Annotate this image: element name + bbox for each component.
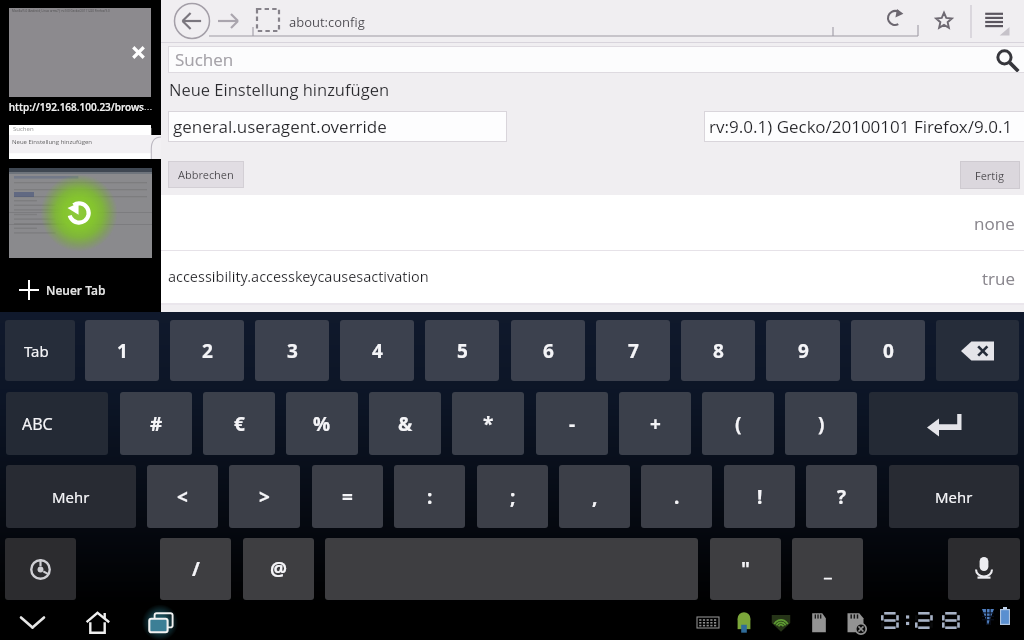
button[interactable]: > [229, 465, 300, 528]
staticText: Tab [24, 341, 49, 361]
staticText: , [592, 484, 598, 510]
staticText: @ [270, 556, 288, 582]
button[interactable] [9, 168, 152, 258]
button[interactable]: Enter [869, 392, 1018, 455]
button[interactable]: % [286, 392, 358, 455]
staticText: Mehr [935, 487, 973, 507]
staticText: & [398, 411, 413, 437]
button[interactable]: @ [243, 538, 314, 600]
button[interactable]: 5 [425, 320, 499, 381]
staticText: Mehr [52, 487, 90, 507]
staticText: 3 [287, 338, 298, 364]
button[interactable]: Fertig [960, 161, 1020, 189]
button[interactable]: Suchen [168, 46, 1024, 73]
button[interactable]: Abbrechen [168, 161, 244, 188]
staticText: ( [735, 411, 742, 437]
staticText: Abbrechen [178, 167, 234, 182]
button[interactable]: / [160, 538, 231, 600]
staticText: 0 [883, 338, 894, 364]
button[interactable]: Back [12, 605, 52, 640]
staticText: ) [818, 411, 825, 437]
staticText: http://192.168.100.23/brows... [0, 100, 161, 114]
button[interactable]: ? [806, 465, 877, 528]
staticText: Suchen [175, 48, 234, 71]
staticText: * [483, 411, 494, 437]
button[interactable]: Suchen [9, 125, 161, 159]
button[interactable]: general.useragent.override [168, 111, 507, 142]
button[interactable]: 0 [851, 320, 925, 381]
staticText: 2 [202, 338, 213, 364]
staticText: > [259, 484, 270, 510]
button[interactable]: ! [724, 465, 795, 528]
staticText: ; [510, 484, 516, 510]
button[interactable]: = [312, 465, 383, 528]
button[interactable]: ) [785, 392, 857, 455]
button[interactable]: Mehr [889, 465, 1019, 528]
button[interactable]: rv:9.0.1) Gecko/20100101 Firefox/9.0.1 [704, 111, 1024, 142]
staticText: Neue Einstellung hinzufügen [12, 138, 93, 146]
staticText: rv:9.0.1) Gecko/20100101 Firefox/9.0.1 [709, 115, 1013, 138]
staticText: general.useragent.override [173, 115, 387, 138]
button[interactable]: 1 [85, 320, 159, 381]
button[interactable]: 9 [766, 320, 840, 381]
staticText: Neue Einstellung hinzufügen [169, 78, 390, 100]
button[interactable]: Forward [217, 10, 239, 32]
button[interactable]: # [120, 392, 192, 455]
button[interactable]: 7 [596, 320, 670, 381]
button[interactable]: - [536, 392, 608, 455]
button[interactable]: Close tab [128, 42, 149, 63]
button[interactable]: Backspace [936, 320, 1019, 381]
button[interactable]: none [161, 195, 1024, 250]
staticText: ABC [22, 413, 53, 435]
staticText: = [342, 484, 353, 510]
button[interactable]: Neuer Tab [0, 266, 161, 312]
button[interactable]: Recent apps [139, 605, 181, 640]
button[interactable]: Mozilla/5.0 (Android; Linux armv7l; rv:9… [9, 8, 151, 97]
button[interactable]: _ [792, 538, 863, 600]
button[interactable]: Tab [5, 320, 75, 381]
staticText: " [741, 556, 750, 582]
button[interactable]: Change keyboard [5, 538, 76, 600]
button[interactable]: 3 [255, 320, 329, 381]
staticText: Mozilla/5.0 (Android; Linux armv7l; rv:9… [12, 9, 110, 13]
button[interactable]: 8 [681, 320, 755, 381]
button[interactable]: , [559, 465, 630, 528]
button[interactable]: Home [82, 605, 114, 640]
button[interactable]: . [641, 465, 712, 528]
button[interactable]: Back [173, 2, 211, 40]
staticText: ! [757, 484, 763, 510]
staticText: accessibility.accesskeycausesactivation [168, 267, 429, 287]
staticText: : [427, 484, 433, 510]
button[interactable]: & [369, 392, 441, 455]
staticText: 5 [457, 338, 468, 364]
button[interactable]: : [394, 465, 465, 528]
staticText: / [192, 556, 200, 582]
staticText: < [177, 484, 188, 510]
button[interactable]: € [203, 392, 275, 455]
button[interactable]: Search [995, 49, 1017, 71]
button[interactable]: ABC [6, 392, 108, 455]
button[interactable]: Voice input [948, 538, 1020, 600]
staticText: ? [837, 484, 847, 510]
button[interactable]: 6 [511, 320, 585, 381]
staticText: 9 [798, 338, 809, 364]
button[interactable]: Menu [982, 5, 1012, 35]
button[interactable]: 4 [340, 320, 414, 381]
button[interactable]: ; [477, 465, 548, 528]
button[interactable]: " [710, 538, 781, 600]
button[interactable]: < [147, 465, 218, 528]
button[interactable]: + [619, 392, 691, 455]
button[interactable]: * [452, 392, 524, 455]
staticText: € [234, 411, 245, 437]
button[interactable]: Mehr [6, 465, 136, 528]
button[interactable]: Bookmark [930, 6, 958, 34]
button[interactable]: Reload [881, 5, 911, 35]
staticText: Fertig [975, 168, 1005, 183]
button[interactable]: 2 [170, 320, 244, 381]
button[interactable]: ( [702, 392, 774, 455]
button[interactable]: accessibility.accesskeycausesactivation [161, 251, 1024, 303]
staticText: Suchen [13, 125, 34, 133]
staticText: 4 [372, 338, 383, 364]
staticText: Neuer Tab [46, 282, 106, 298]
